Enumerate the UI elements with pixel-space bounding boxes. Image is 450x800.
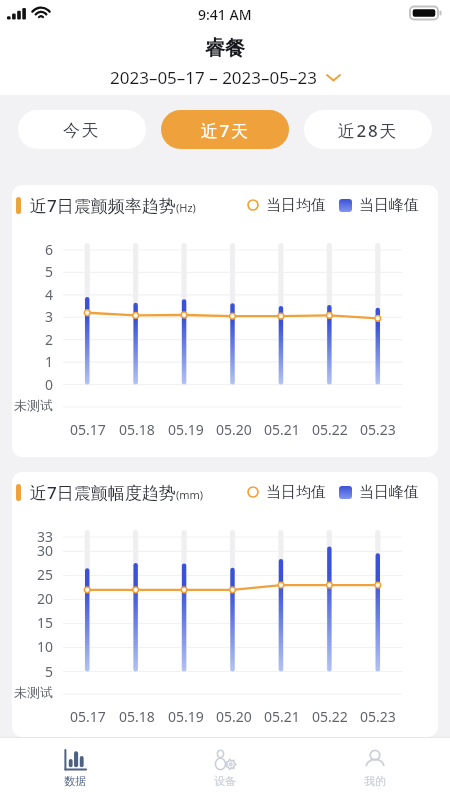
staticText: 20	[23, 589, 53, 608]
staticText: 30	[23, 541, 53, 560]
staticText: 10	[23, 637, 53, 656]
button[interactable]: 我的	[300, 743, 450, 796]
staticText: 今天	[63, 120, 101, 141]
staticText: 33	[23, 527, 53, 546]
staticText: 05.18	[119, 707, 155, 726]
staticText: 05.21	[264, 707, 300, 726]
button[interactable]: 数据	[0, 743, 150, 796]
staticText: 05.20	[216, 707, 252, 726]
staticText: 05.21	[264, 420, 300, 439]
staticText: 近7天	[201, 119, 250, 142]
staticText: 当日峰值	[359, 483, 419, 502]
staticText: 25	[23, 565, 53, 584]
staticText: 近7日震颤幅度趋势	[30, 481, 176, 504]
button[interactable]: 设备	[150, 743, 300, 796]
staticText: 当日均值	[266, 196, 326, 215]
staticText: 4	[23, 285, 53, 304]
staticText: 当日均值	[266, 483, 326, 502]
button[interactable]: 今天	[18, 110, 146, 149]
staticText: 设备	[214, 774, 236, 788]
staticText: 05.20	[216, 420, 252, 439]
staticText: 6	[23, 240, 53, 259]
staticText: 2	[23, 330, 53, 349]
staticText: 5	[23, 662, 53, 681]
staticText: 05.17	[70, 420, 106, 439]
staticText: 05.23	[360, 420, 396, 439]
staticText: 我的	[364, 774, 386, 788]
staticText: 近7日震颤频率趋势	[30, 194, 176, 217]
button[interactable]: 近7天	[161, 110, 289, 149]
staticText: 5	[23, 262, 53, 281]
button[interactable]: 近28天	[304, 110, 432, 149]
staticText: 15	[23, 613, 53, 632]
staticText: 0	[23, 375, 53, 394]
button[interactable]: Select date range	[106, 64, 345, 91]
staticText: 05.19	[168, 707, 204, 726]
staticText: 05.22	[312, 707, 348, 726]
staticText: 睿餐	[205, 36, 245, 61]
staticText: 05.22	[312, 420, 348, 439]
staticText: 3	[23, 307, 53, 326]
staticText: 05.18	[119, 420, 155, 439]
staticText: (Hz)	[176, 200, 196, 215]
staticText: 未测试	[14, 684, 53, 700]
staticText: 05.23	[360, 707, 396, 726]
staticText: 当日峰值	[359, 196, 419, 215]
staticText: 9:41 AM	[198, 5, 252, 24]
staticText: 2023–05–17 – 2023–05–23	[110, 66, 317, 89]
staticText: 05.19	[168, 420, 204, 439]
staticText: (mm)	[176, 487, 204, 502]
staticText: 数据	[64, 774, 86, 788]
staticText: 近28天	[338, 119, 398, 142]
staticText: 05.17	[70, 707, 106, 726]
staticText: 未测试	[14, 397, 53, 413]
staticText: 1	[23, 352, 53, 371]
